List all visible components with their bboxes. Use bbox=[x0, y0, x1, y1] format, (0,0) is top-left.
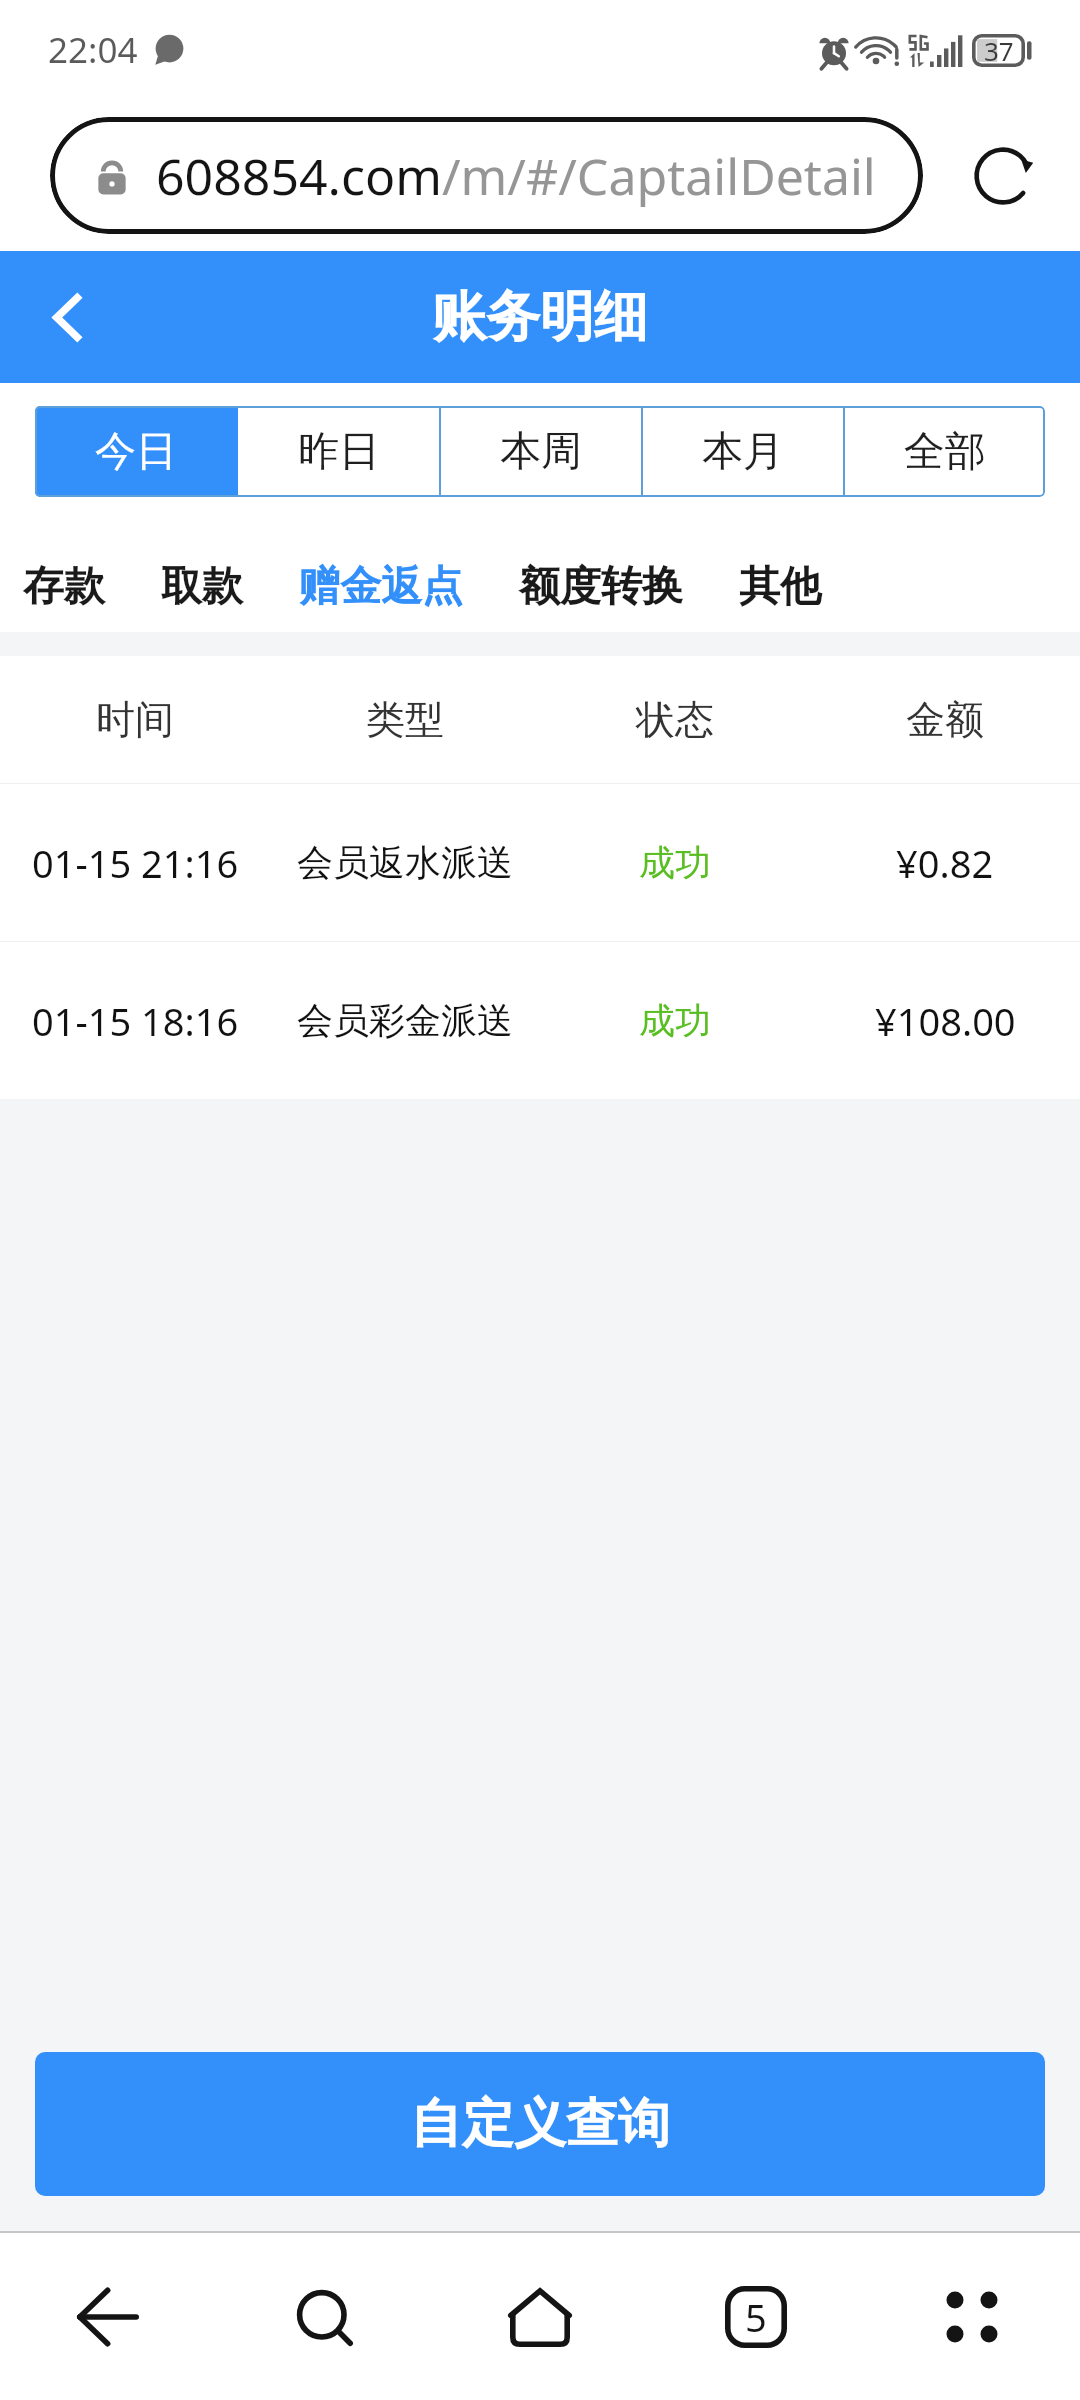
button[interactable]: 本月 bbox=[643, 406, 843, 497]
button[interactable]: Menu bbox=[864, 2233, 1080, 2400]
button[interactable]: 01-15 18:16 bbox=[0, 942, 1080, 1099]
staticText: ¥0.82 bbox=[896, 837, 994, 889]
staticText: 全部 bbox=[904, 426, 986, 478]
staticText: 类型 bbox=[366, 695, 444, 744]
staticText: 时间 bbox=[96, 695, 174, 744]
staticText: 22:04 bbox=[48, 26, 138, 74]
button[interactable]: 存款 bbox=[1, 549, 127, 625]
staticText: /m/#/CaptailDetail bbox=[442, 142, 876, 210]
staticText: 会员彩金派送 bbox=[297, 998, 513, 1043]
staticText: 37 bbox=[984, 33, 1014, 68]
staticText: 存款 bbox=[23, 561, 105, 613]
button[interactable]: Back bbox=[26, 277, 106, 357]
staticText: 今日 bbox=[95, 426, 177, 478]
button[interactable]: 额度转换 bbox=[497, 549, 705, 625]
staticText: 状态 bbox=[636, 695, 714, 744]
staticText: 额度转换 bbox=[519, 561, 683, 613]
staticText: 01-15 21:16 bbox=[32, 837, 239, 889]
button[interactable]: 608854.com bbox=[50, 117, 923, 234]
staticText: 本周 bbox=[500, 426, 582, 478]
button[interactable]: Back bbox=[0, 2233, 216, 2400]
staticText: 昨日 bbox=[298, 426, 380, 478]
staticText: 取款 bbox=[161, 561, 243, 613]
button[interactable]: 其他 bbox=[717, 549, 843, 625]
button[interactable]: Search bbox=[216, 2233, 432, 2400]
button[interactable]: 01-15 21:16 bbox=[0, 784, 1080, 941]
staticText: 608854.com bbox=[156, 142, 442, 210]
staticText: 账务明细 bbox=[432, 283, 648, 351]
button[interactable]: 本周 bbox=[441, 406, 641, 497]
staticText: 01-15 18:16 bbox=[32, 995, 239, 1047]
staticText: 成功 bbox=[639, 840, 711, 885]
staticText: ¥108.00 bbox=[875, 995, 1016, 1047]
button[interactable]: Reload bbox=[960, 133, 1046, 219]
button[interactable]: Home bbox=[432, 2233, 648, 2400]
button[interactable]: 取款 bbox=[139, 549, 265, 625]
button[interactable]: 昨日 bbox=[238, 406, 439, 497]
staticText: 赠金返点 bbox=[299, 561, 463, 613]
button[interactable]: Tabs bbox=[648, 2233, 864, 2400]
button[interactable]: 自定义查询 bbox=[35, 2052, 1045, 2196]
staticText: 5 bbox=[745, 2291, 767, 2343]
staticText: 成功 bbox=[639, 998, 711, 1043]
staticText: 其他 bbox=[739, 561, 821, 613]
button[interactable]: 全部 bbox=[845, 406, 1045, 497]
staticText: 自定义查询 bbox=[410, 2091, 670, 2157]
staticText: 本月 bbox=[702, 426, 784, 478]
button[interactable]: 今日 bbox=[35, 406, 236, 497]
button[interactable]: 赠金返点 bbox=[277, 549, 485, 625]
staticText: 会员返水派送 bbox=[297, 840, 513, 885]
staticText: 金额 bbox=[906, 695, 984, 744]
